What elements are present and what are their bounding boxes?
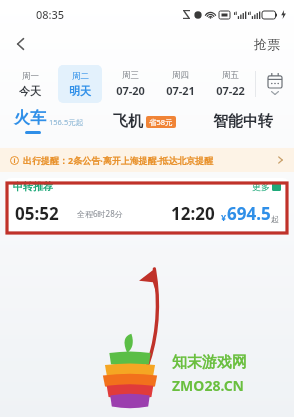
button[interactable]: Back <box>6 29 36 59</box>
staticText: 周一 <box>22 71 39 82</box>
button[interactable]: 火车 <box>0 108 98 134</box>
staticText: 抢票 <box>254 36 280 52</box>
staticText: 2条公告·离开上海提醒·抵达北京提醒 <box>68 154 214 166</box>
staticText: 飞机 <box>113 112 143 131</box>
button[interactable]: 飞机 <box>98 112 191 131</box>
staticText: 周四 <box>172 70 189 81</box>
staticText: 出行提醒： <box>23 155 68 166</box>
staticText: 全程6时28分 <box>77 208 123 219</box>
staticText: 周五 <box>222 70 239 81</box>
staticText: 省58元 <box>149 117 173 127</box>
staticText: 起 <box>271 214 279 224</box>
staticText: 中转推荐 <box>13 180 53 193</box>
staticText: 07-21 <box>166 83 195 98</box>
staticText: 智能中转 <box>213 112 273 131</box>
staticText: 08:35 <box>36 7 65 22</box>
staticText: 周三 <box>122 70 139 81</box>
staticText: 更多 <box>252 181 270 192</box>
button[interactable]: 周二 <box>58 65 102 103</box>
staticText: 07-20 <box>116 83 145 98</box>
staticText: 周二 <box>72 71 89 82</box>
button[interactable]: 周四 <box>158 65 202 103</box>
button[interactable]: 周一 <box>7 65 52 103</box>
staticText: 12:20 <box>171 202 215 225</box>
staticText: 07-22 <box>216 83 245 98</box>
staticText: 156.5元起 <box>49 117 84 127</box>
button[interactable]: 出行提醒： <box>0 148 294 172</box>
button[interactable]: Calendar <box>256 62 294 106</box>
staticText: 694.5 <box>227 202 271 225</box>
button[interactable]: 中转推荐 <box>5 178 289 231</box>
staticText: 知末游戏网 <box>172 353 247 372</box>
button[interactable]: 抢票 <box>250 32 284 56</box>
staticText: 05:52 <box>15 202 59 225</box>
button[interactable]: 智能中转 <box>191 112 294 131</box>
staticText: ¥ <box>221 211 227 223</box>
button[interactable]: 周三 <box>108 65 152 103</box>
staticText: ZMO28.CN <box>172 376 245 395</box>
button[interactable]: 周五 <box>208 65 252 103</box>
staticText: 火车 <box>14 108 46 128</box>
staticText: 明天 <box>69 84 91 98</box>
staticText: 今天 <box>19 84 41 98</box>
